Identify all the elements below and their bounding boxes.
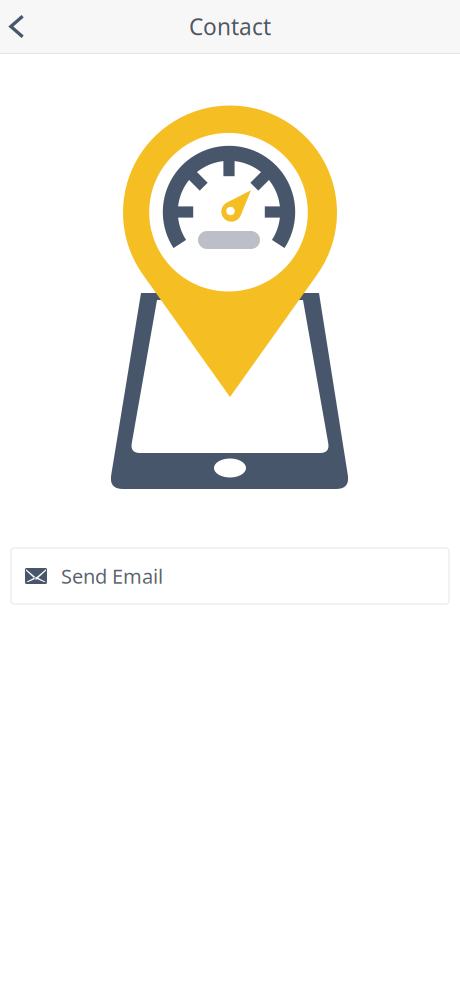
button[interactable]: Send Email xyxy=(11,548,449,604)
button[interactable]: Back xyxy=(0,0,33,53)
staticText: Contact xyxy=(189,11,271,41)
staticText: Send Email xyxy=(61,563,163,589)
